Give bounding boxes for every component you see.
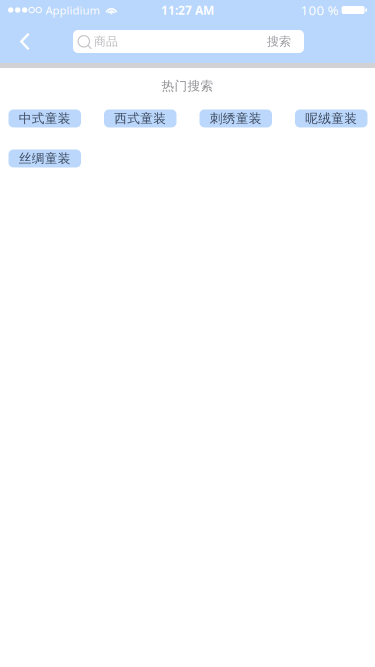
staticText: 西式童装: [114, 110, 166, 126]
staticText: 11:27 AM: [161, 2, 214, 18]
staticText: 搜索: [267, 34, 291, 49]
staticText: 中式童装: [19, 110, 71, 126]
staticText: 商品: [94, 34, 118, 49]
staticText: 100 %: [301, 1, 339, 19]
button[interactable]: 刺绣童装: [199, 109, 272, 127]
button[interactable]: 丝绸童装: [8, 149, 81, 167]
staticText: 刺绣童装: [210, 110, 262, 126]
staticText: Applidium: [45, 2, 100, 18]
staticText: 丝绸童装: [19, 150, 71, 166]
button[interactable]: 西式童装: [104, 109, 176, 127]
button[interactable]: 商品: [73, 30, 304, 53]
button[interactable]: 中式童装: [8, 109, 81, 127]
button[interactable]: 呢绒童装: [295, 109, 367, 127]
button[interactable]: Back: [0, 20, 44, 63]
staticText: 热门搜索: [161, 78, 213, 94]
staticText: 呢绒童装: [305, 110, 357, 126]
